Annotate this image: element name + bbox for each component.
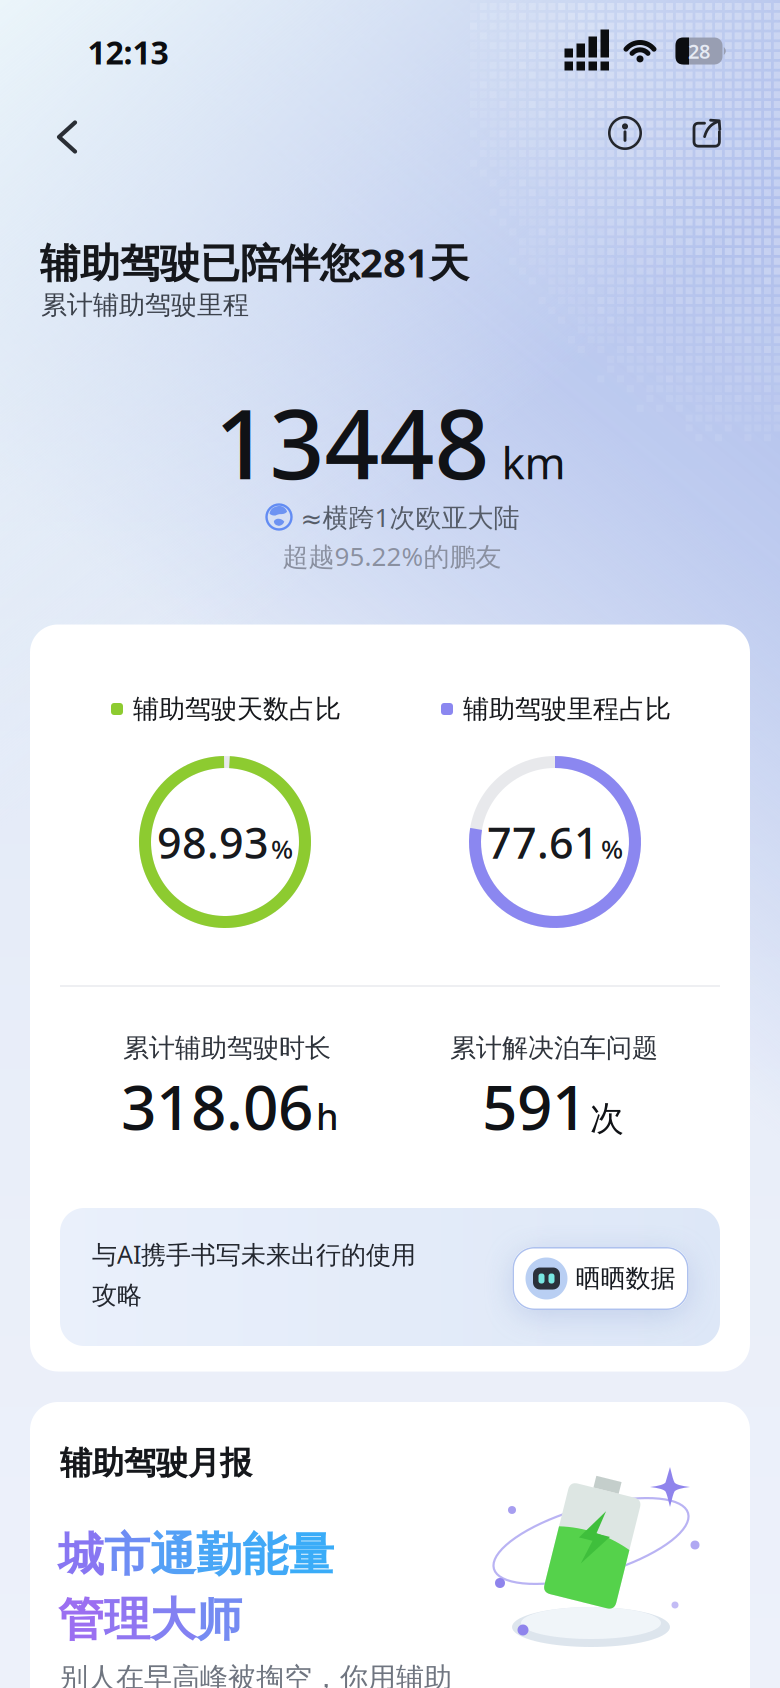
staticText: 攻略	[92, 1280, 142, 1310]
staticText: 晒晒数据	[575, 1263, 675, 1294]
staticText: 别人在早高峰被掏空，你用辅助	[60, 1661, 452, 1688]
button[interactable]: Back	[39, 109, 95, 165]
button[interactable]: Share	[681, 107, 733, 159]
staticText: %	[601, 831, 623, 866]
staticText: 勤	[196, 1527, 242, 1583]
staticText: ≈横跨1次欧亚大陆	[300, 500, 519, 534]
staticText: 次	[590, 1098, 624, 1140]
staticText: %	[271, 831, 293, 866]
staticText: 辅助驾驶月报	[60, 1443, 252, 1483]
staticText: 12:13	[87, 31, 168, 73]
staticText: 591	[482, 1065, 587, 1147]
staticText: 318.06	[121, 1065, 313, 1147]
staticText: 98.93	[157, 813, 269, 870]
staticText: 与AI携手书写未来出行的使用	[92, 1237, 416, 1271]
staticText: 能	[242, 1527, 288, 1583]
staticText: 辅助驾驶里程占比	[463, 693, 671, 725]
staticText: 师	[196, 1592, 242, 1648]
button[interactable]: Info	[599, 107, 651, 159]
staticText: 累计辅助驾驶里程	[41, 289, 249, 321]
staticText: 77.61	[487, 813, 599, 870]
staticText: 量	[288, 1527, 334, 1583]
staticText: 大	[150, 1592, 196, 1648]
staticText: 辅助驾驶已陪伴您281天	[40, 235, 469, 288]
staticText: 辅助驾驶天数占比	[133, 693, 341, 725]
staticText: 城	[58, 1527, 104, 1583]
staticText: 累计解决泊车问题	[450, 1032, 658, 1064]
button[interactable]: 晒晒数据	[512, 1247, 688, 1310]
staticText: km	[501, 433, 565, 491]
staticText: 理	[104, 1592, 150, 1648]
staticText: 管	[58, 1592, 104, 1648]
staticText: 28	[688, 38, 710, 64]
staticText: 超越95.22%的鹏友	[282, 539, 501, 573]
staticText: 累计辅助驾驶时长	[123, 1032, 331, 1064]
staticText: 市	[104, 1527, 150, 1583]
staticText: 通	[150, 1527, 196, 1583]
staticText: h	[316, 1092, 339, 1140]
staticText: 13448	[214, 378, 489, 506]
